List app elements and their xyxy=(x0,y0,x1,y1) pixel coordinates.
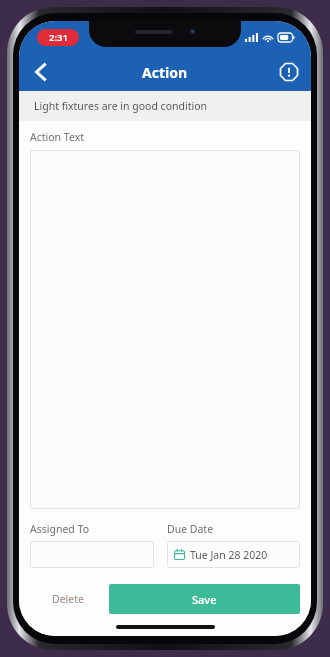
button[interactable]: Information xyxy=(267,53,311,91)
staticText: Due Date xyxy=(167,522,214,536)
staticText: Action xyxy=(142,63,188,82)
staticText: 2:31 xyxy=(49,31,68,44)
staticText: Assigned To xyxy=(30,522,89,536)
staticText: Save xyxy=(192,592,217,607)
button[interactable]: Tue Jan 28 2020 xyxy=(167,541,300,568)
button[interactable]: Light fixtures are in good condition xyxy=(19,91,311,121)
button[interactable]: Delete xyxy=(30,584,106,614)
button[interactable] xyxy=(30,541,154,568)
staticText: Action Text xyxy=(30,130,84,144)
staticText: Delete xyxy=(52,592,84,606)
staticText: Tue Jan 28 2020 xyxy=(190,548,268,562)
staticText: Light fixtures are in good condition xyxy=(34,99,207,113)
button[interactable]: Save xyxy=(109,584,300,614)
button[interactable]: Back xyxy=(19,53,63,91)
